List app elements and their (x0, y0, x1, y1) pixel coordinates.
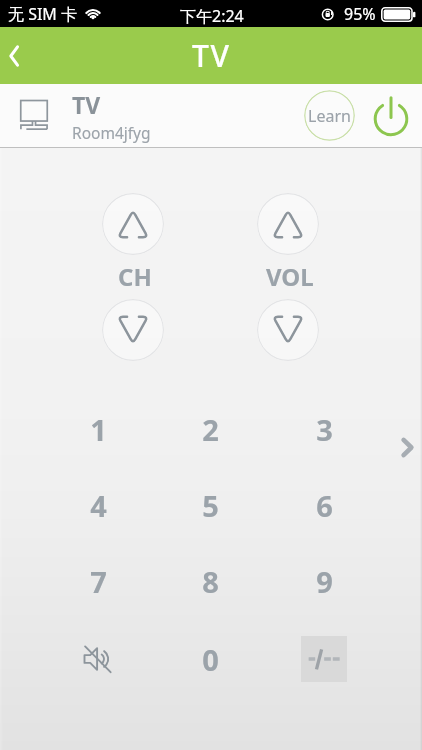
staticText: 3 (316, 410, 333, 449)
staticText: 0 (202, 640, 219, 679)
staticText: 5 (202, 486, 219, 525)
button[interactable]: 5 (176, 477, 244, 533)
button[interactable]: 9 (290, 553, 358, 609)
staticText: 95% (344, 3, 376, 25)
staticText: 下午2:24 (180, 5, 244, 27)
staticText: Learn (308, 105, 351, 127)
button[interactable]: Channel down (102, 299, 164, 361)
staticText: 1 (90, 410, 107, 449)
button[interactable]: Volume up (257, 193, 319, 255)
staticText: 8 (202, 562, 219, 601)
staticText: 2 (202, 410, 219, 449)
button[interactable]: Volume down (257, 299, 319, 361)
staticText: CH (118, 260, 152, 293)
staticText: VOL (266, 260, 314, 293)
staticText: 无 SIM 卡 (8, 3, 78, 25)
staticText: 4 (90, 486, 107, 525)
staticText: 9 (316, 562, 333, 601)
button[interactable]: 1 (64, 401, 132, 457)
staticText: TV (192, 35, 231, 76)
button[interactable]: 2 (176, 401, 244, 457)
button[interactable]: 0 (176, 631, 244, 687)
button[interactable]: 8 (176, 553, 244, 609)
button[interactable]: 3 (290, 401, 358, 457)
button[interactable]: Power (369, 94, 413, 138)
button[interactable]: Mute (70, 631, 126, 687)
button[interactable]: 6 (290, 477, 358, 533)
staticText: 7 (90, 562, 107, 601)
button[interactable]: 4 (64, 477, 132, 533)
button[interactable]: Channel up (102, 193, 164, 255)
button[interactable]: Dash (296, 631, 352, 687)
button[interactable]: 7 (64, 553, 132, 609)
staticText: 6 (316, 486, 333, 525)
staticText: Room4jfyg (72, 122, 151, 143)
button[interactable]: Back (0, 27, 42, 84)
button[interactable]: Learn (304, 90, 355, 141)
button[interactable]: Next page (387, 427, 422, 467)
staticText: TV (72, 89, 101, 120)
